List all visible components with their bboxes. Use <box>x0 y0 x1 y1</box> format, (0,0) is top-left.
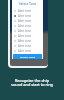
staticText: Alert tone <box>18 49 31 53</box>
button[interactable]: Alert tone <box>12 43 43 48</box>
button[interactable]: Alert tone <box>12 18 43 23</box>
staticText: Recognize the chip sound and start to ri… <box>11 78 53 88</box>
button[interactable]: Alert tone <box>12 13 43 18</box>
staticText: Alert tone <box>18 34 31 38</box>
staticText: Alert tone <box>18 14 31 18</box>
staticText: Alert tone <box>18 9 31 13</box>
button[interactable]: Alert tone <box>12 8 43 13</box>
button[interactable]: SELECT TONE <box>13 54 42 59</box>
button[interactable]: Alert tone <box>12 33 43 38</box>
staticText: Select Tone <box>19 2 37 6</box>
staticText: Alert tone <box>18 39 31 43</box>
button[interactable]: Select Tone <box>12 0 43 8</box>
button[interactable]: Alert tone <box>12 23 43 28</box>
staticText: Alert tone <box>18 44 31 48</box>
button[interactable]: Alert tone <box>12 38 43 43</box>
staticText: Alert tone <box>18 24 31 28</box>
staticText: Alert tone <box>18 29 31 33</box>
button[interactable]: Alert tone <box>12 48 43 53</box>
button[interactable]: Alert tone <box>12 28 43 33</box>
staticText: Alert tone <box>18 19 31 23</box>
staticText: SELECT TONE <box>20 55 35 58</box>
